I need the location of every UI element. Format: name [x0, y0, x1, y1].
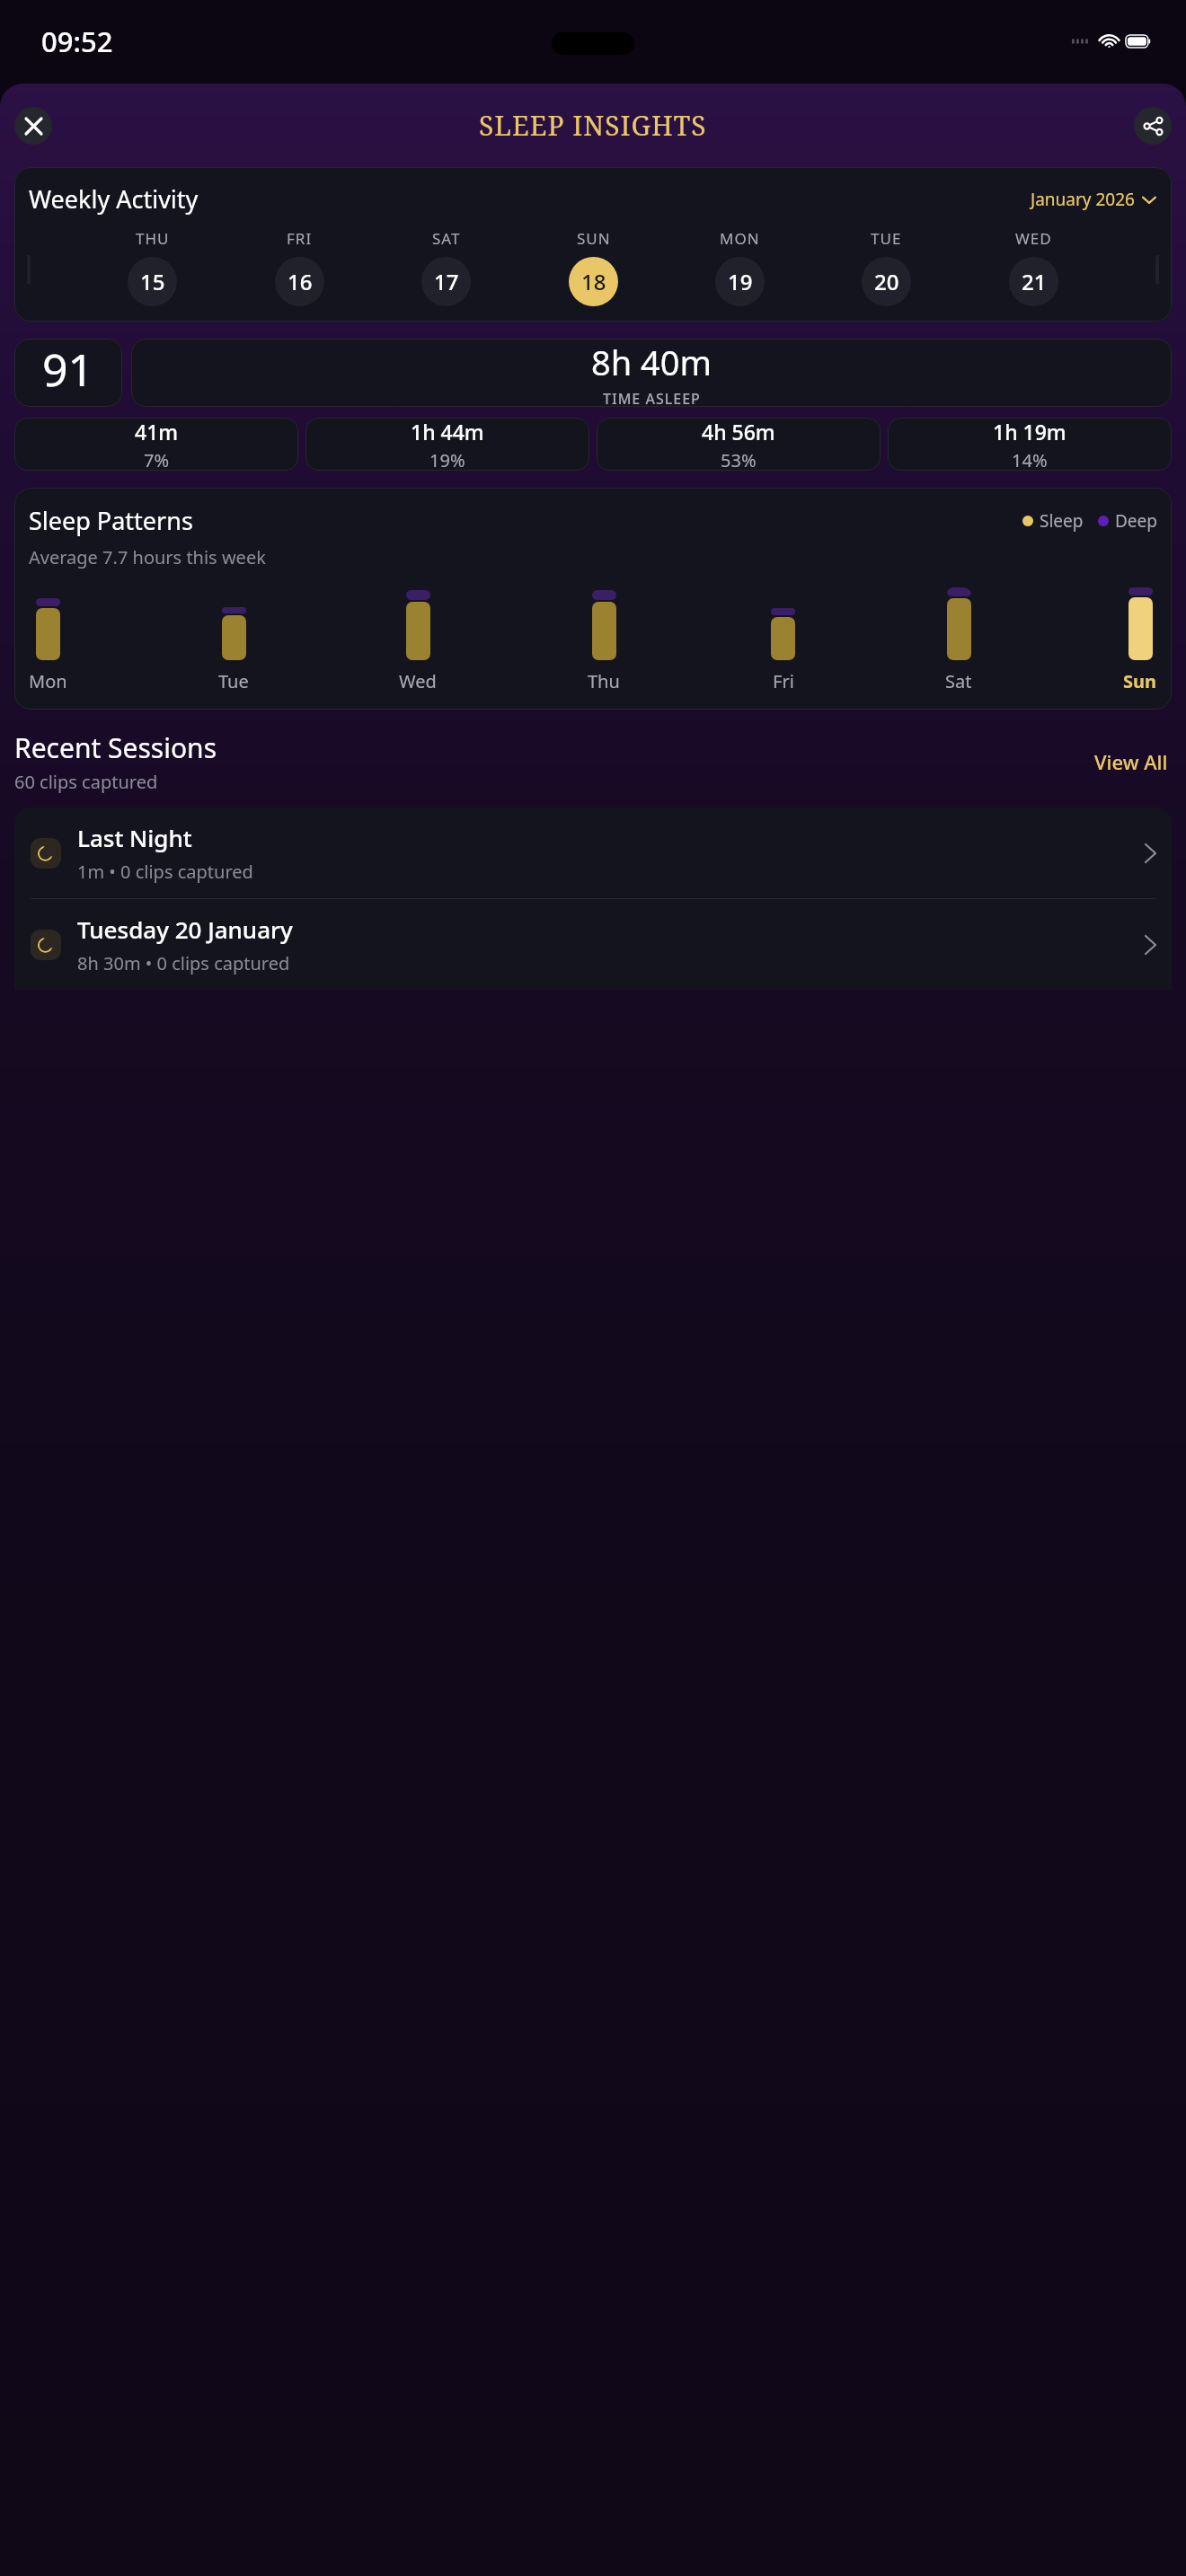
- staticText: 14%: [1012, 448, 1048, 471]
- button[interactable]: Share: [1134, 107, 1172, 145]
- staticText: 41m: [135, 418, 179, 446]
- staticText: Deep: [1115, 509, 1157, 533]
- staticText: Sat: [945, 669, 972, 693]
- staticText: Recent Sessions: [14, 729, 217, 766]
- staticText: Tue: [218, 669, 249, 693]
- staticText: 20: [874, 267, 899, 296]
- button[interactable]: Tue: [218, 587, 249, 693]
- button[interactable]: 1h 44m: [305, 418, 589, 471]
- button[interactable]: WED: [1009, 228, 1058, 306]
- button[interactable]: Last Night: [14, 807, 1172, 898]
- button[interactable]: THU: [128, 228, 177, 306]
- button[interactable]: Sun: [1123, 587, 1157, 693]
- staticText: Sleep: [1040, 509, 1084, 533]
- staticText: Fri: [773, 669, 794, 693]
- staticText: SUN: [577, 228, 611, 249]
- staticText: WED: [1015, 228, 1052, 249]
- staticText: FRI: [287, 228, 313, 249]
- staticText: Wed: [399, 669, 437, 693]
- button[interactable]: Mon: [29, 587, 67, 693]
- staticText: 53%: [721, 448, 757, 471]
- staticText: Last Night: [77, 822, 192, 853]
- staticText: Sleep Patterns: [29, 504, 193, 537]
- button[interactable]: 1h 19m: [888, 418, 1172, 471]
- staticText: Mon: [29, 669, 67, 693]
- staticText: 60 clips captured: [14, 770, 158, 794]
- staticText: 91: [42, 339, 94, 400]
- staticText: 19%: [429, 448, 465, 471]
- staticText: SLEEP SCORE: [19, 404, 119, 407]
- button[interactable]: TUE: [862, 228, 911, 306]
- staticText: 8h 30m • 0 clips captured: [77, 951, 290, 975]
- staticText: View All: [1094, 748, 1168, 775]
- staticText: 21: [1022, 267, 1047, 296]
- button[interactable]: Fri: [771, 587, 795, 693]
- button[interactable]: Tuesday 20 January: [14, 899, 1172, 990]
- staticText: Weekly Activity: [29, 182, 199, 216]
- button[interactable]: Close: [14, 107, 52, 145]
- staticText: Sun: [1123, 669, 1157, 693]
- staticText: THU: [136, 228, 170, 249]
- staticText: Thu: [588, 669, 620, 693]
- button[interactable]: 4h 56m: [597, 418, 881, 471]
- staticText: 09:52: [41, 22, 113, 60]
- staticText: TIME ASLEEP: [603, 389, 701, 407]
- staticText: 18: [581, 267, 606, 296]
- staticText: SLEEP INSIGHTS: [479, 107, 707, 144]
- staticText: 17: [434, 267, 459, 296]
- button[interactable]: 8h 40m: [131, 339, 1172, 407]
- staticText: SAT: [432, 228, 461, 249]
- staticText: MON: [720, 228, 760, 249]
- button[interactable]: Wed: [399, 587, 437, 693]
- button[interactable]: January 2026: [1029, 186, 1157, 213]
- button[interactable]: 41m: [14, 418, 298, 471]
- staticText: January 2026: [1031, 188, 1135, 211]
- staticText: 1m • 0 clips captured: [77, 860, 253, 884]
- staticText: 7%: [144, 448, 170, 471]
- button[interactable]: FRI: [275, 228, 324, 306]
- staticText: 1h 44m: [411, 418, 484, 446]
- button[interactable]: View All: [1091, 745, 1172, 779]
- button[interactable]: 91: [14, 339, 122, 407]
- staticText: 19: [728, 267, 753, 296]
- button[interactable]: SUN: [569, 228, 618, 306]
- staticText: 15: [140, 267, 165, 296]
- button[interactable]: MON: [715, 228, 765, 306]
- staticText: TUE: [871, 228, 902, 249]
- staticText: Average 7.7 hours this week: [29, 545, 266, 569]
- button[interactable]: Thu: [588, 587, 620, 693]
- staticText: 8h 40m: [591, 339, 712, 385]
- staticText: 4h 56m: [702, 418, 775, 446]
- button[interactable]: SAT: [421, 228, 471, 306]
- staticText: 16: [288, 267, 313, 296]
- button[interactable]: Sat: [945, 587, 972, 693]
- staticText: 1h 19m: [993, 418, 1067, 446]
- staticText: Tuesday 20 January: [77, 913, 293, 945]
